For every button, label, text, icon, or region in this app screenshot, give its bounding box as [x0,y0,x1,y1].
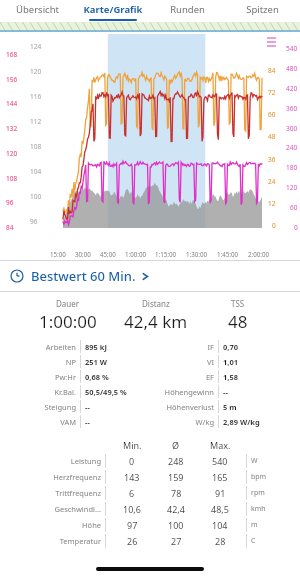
staticText: 72 [268,88,276,97]
staticText: 100 [168,519,184,531]
staticText: Steigung [44,402,76,412]
staticText: 50,5/49,5 % [85,387,127,397]
staticText: 156 [6,75,18,84]
staticText: 143 [124,471,140,483]
staticText: 124 [30,42,42,51]
staticText: Karte/Grafik [83,3,143,16]
staticText: 0,68 % [85,372,109,382]
staticText: 251 W [85,357,108,367]
staticText: Runden [170,3,205,16]
staticText: m [251,520,258,530]
staticText: Distanz [142,298,170,309]
staticText: Max. [210,439,231,451]
staticText: 1:00:00 [125,250,147,258]
staticText: 27 [171,535,182,547]
staticText: 240 [286,143,298,152]
staticText: Leistung [70,456,101,466]
staticText: 104 [30,167,42,176]
staticText: 159 [168,471,184,483]
staticText: Höhe [82,520,101,530]
staticText: 42,4 km [124,310,188,333]
staticText: 96 [30,217,38,226]
staticText: 28 [215,535,226,547]
staticText: 1,58 [223,372,239,382]
staticText: Dauer [56,298,80,309]
staticText: Arbeiten [45,342,76,352]
staticText: Pw:Hr [54,372,76,382]
staticText: 480 [286,64,298,73]
staticText: -- [85,417,90,427]
staticText: -- [223,387,228,397]
staticText: Höhenverlust [166,402,214,412]
staticText: 112 [30,117,42,126]
staticText: 0 [272,221,276,230]
staticText: 116 [30,92,42,101]
staticText: 1:30:00 [186,250,208,258]
staticText: 0 [294,223,298,232]
staticText: 1,01 [223,357,239,367]
staticText: NP [65,357,76,367]
staticText: Kr.Bal. [54,387,76,397]
staticText: 165 [212,471,228,483]
staticText: IF [207,342,214,352]
staticText: 108 [30,142,42,151]
staticText: kmh [251,504,266,514]
staticText: 132 [6,124,18,133]
staticText: 100 [30,192,42,201]
staticText: 248 [168,455,184,467]
button[interactable]: Diagramm Einstellungen [266,34,278,46]
staticText: 120 [30,67,42,76]
staticText: 180 [286,163,298,172]
button[interactable]: Spitzen [225,3,300,19]
staticText: 120 [6,149,18,158]
staticText: 168 [6,50,18,59]
staticText: 1:45:00 [217,250,239,258]
staticText: 26 [127,535,138,547]
staticText: 96 [6,198,14,207]
staticText: 10,6 [123,503,141,515]
staticText: 895 kJ [85,342,107,352]
staticText: Min. [123,439,142,451]
staticText: 360 [286,104,298,113]
staticText: Temperatur [59,536,101,546]
staticText: 12 [268,199,276,208]
staticText: -- [85,402,90,412]
staticText: 45:00 [100,250,116,258]
staticText: Geschwindi... [54,504,101,514]
staticText: 120 [286,183,298,192]
staticText: 84 [268,66,276,75]
staticText: Trittfrequenz [55,488,101,498]
staticText: 6 [129,487,135,499]
staticText: 48 [268,132,276,141]
button[interactable]: Runden [150,3,225,19]
staticText: 0,70 [223,342,239,352]
staticText: 30:00 [75,250,91,258]
staticText: 0 [129,455,135,467]
staticText: Ø [172,439,180,451]
staticText: 1:15:00 [155,250,177,258]
staticText: C [251,536,256,546]
staticText: TSS [231,298,245,309]
staticText: Herzfrequenz [53,472,101,482]
button[interactable]: Übersicht [0,3,75,19]
staticText: 48 [228,310,248,333]
staticText: VAM [60,417,76,427]
staticText: 78 [171,487,182,499]
staticText: Spitzen [246,3,279,16]
button[interactable]: Karte/Grafik [75,3,150,21]
staticText: 420 [286,84,298,93]
staticText: 60 [290,203,298,212]
staticText: 1:00:00 [39,310,97,333]
staticText: 108 [6,174,18,183]
staticText: Höhengewinn [164,387,214,397]
staticText: 36 [268,155,276,164]
staticText: 84 [6,223,14,232]
staticText: 144 [6,99,18,108]
button[interactable]: Bestwert 60 Min. [0,261,300,291]
staticText: 24 [268,177,276,186]
staticText: 91 [215,487,226,499]
staticText: 540 [212,455,228,467]
staticText: 540 [286,44,298,53]
staticText: EF [205,372,214,382]
staticText: 97 [127,519,138,531]
